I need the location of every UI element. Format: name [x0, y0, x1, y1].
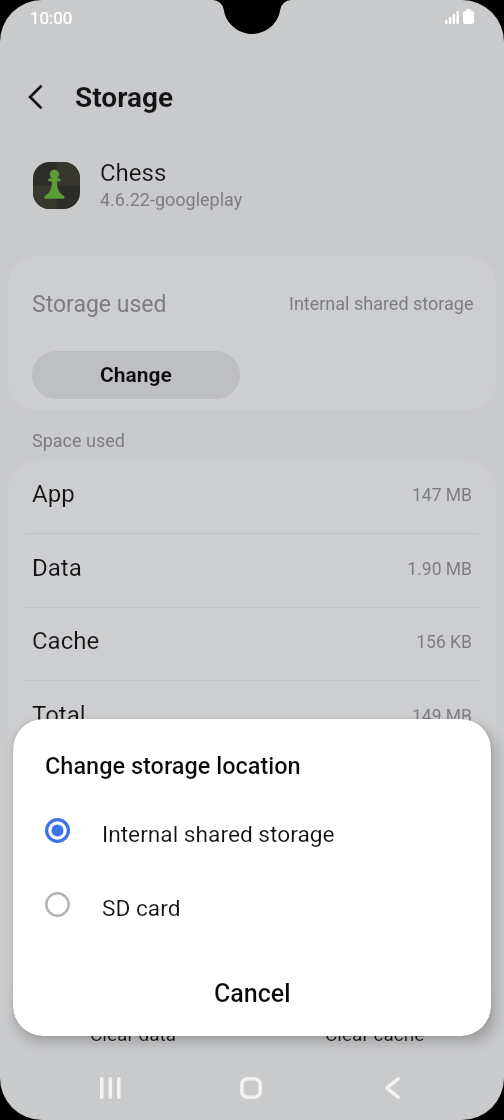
- button[interactable]: Home: [211, 1060, 291, 1116]
- button[interactable]: Navigate up: [20, 81, 52, 113]
- staticText: 1.90 MB: [270, 559, 472, 580]
- button[interactable]: [8, 460, 496, 533]
- staticText: SD card: [102, 895, 181, 922]
- staticText: 156 KB: [270, 632, 472, 653]
- staticText: 147 MB: [270, 485, 472, 506]
- staticText: Cache: [32, 627, 100, 655]
- staticText: Change: [100, 363, 172, 388]
- staticText: Cancel: [214, 979, 291, 1008]
- button[interactable]: [8, 534, 496, 607]
- staticText: Clear cache: [325, 1023, 425, 1045]
- staticText: Chess: [100, 159, 167, 187]
- staticText: 10:00: [30, 8, 73, 28]
- staticText: Internal shared storage: [289, 293, 474, 314]
- button[interactable]: Back: [352, 1060, 432, 1116]
- button[interactable]: Change: [32, 351, 240, 399]
- button[interactable]: [13, 868, 491, 941]
- staticText: Total: [32, 701, 86, 729]
- staticText: 149 MB: [270, 706, 472, 727]
- button[interactable]: [8, 607, 496, 680]
- staticText: Space used: [32, 430, 125, 451]
- staticText: Internal shared storage: [102, 821, 335, 848]
- staticText: Data: [32, 554, 82, 582]
- staticText: Clear data: [90, 1023, 177, 1045]
- button[interactable]: [8, 681, 496, 754]
- button[interactable]: [13, 794, 491, 867]
- staticText: 4.6.22-googleplay: [100, 189, 243, 210]
- button[interactable]: Cancel: [13, 959, 491, 1027]
- staticText: App: [32, 480, 75, 508]
- button[interactable]: Clear cache: [275, 1005, 475, 1063]
- button[interactable]: Clear data: [33, 1005, 233, 1063]
- button[interactable]: Recent apps: [70, 1060, 150, 1116]
- staticText: Storage: [75, 81, 174, 114]
- staticText: Change storage location: [45, 752, 301, 780]
- staticText: Storage used: [32, 291, 167, 318]
